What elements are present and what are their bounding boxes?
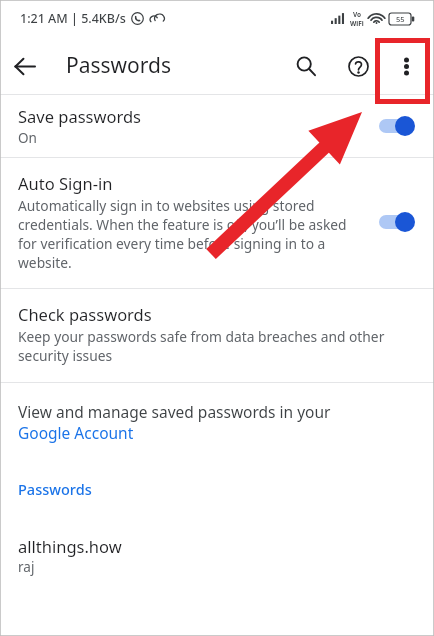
button[interactable]: Help bbox=[334, 42, 382, 90]
staticText: 1:21 AM | 5.4KB/s bbox=[20, 10, 126, 27]
button[interactable]: Search bbox=[282, 42, 330, 90]
staticText: Passwords bbox=[66, 51, 172, 80]
staticText: Passwords bbox=[18, 479, 92, 499]
button[interactable]: Save passwords bbox=[0, 95, 434, 157]
staticText: On bbox=[18, 129, 37, 147]
staticText: WiFi bbox=[350, 19, 364, 28]
button[interactable]: More options bbox=[382, 42, 430, 90]
button[interactable]: Back bbox=[0, 42, 48, 90]
button[interactable]: Toggle bbox=[376, 109, 422, 143]
button[interactable]: Toggle bbox=[376, 205, 422, 239]
staticText: allthings.how bbox=[18, 535, 122, 557]
staticText: Automatically sign in to websites using … bbox=[18, 196, 368, 272]
staticText: Keep your passwords safe from data breac… bbox=[18, 327, 414, 365]
staticText: Check passwords bbox=[18, 303, 152, 325]
staticText: Save passwords bbox=[18, 105, 141, 127]
button[interactable]: Google Account bbox=[18, 422, 134, 443]
button[interactable]: Auto Sign-in bbox=[0, 158, 434, 288]
staticText: Vo bbox=[353, 10, 362, 19]
staticText: 55 bbox=[396, 14, 405, 24]
staticText: raj bbox=[18, 558, 35, 576]
button[interactable]: allthings.how bbox=[0, 535, 434, 576]
button[interactable]: Check passwords bbox=[0, 289, 434, 382]
staticText: View and manage saved passwords in your bbox=[18, 401, 331, 422]
staticText: Auto Sign-in bbox=[18, 172, 113, 194]
